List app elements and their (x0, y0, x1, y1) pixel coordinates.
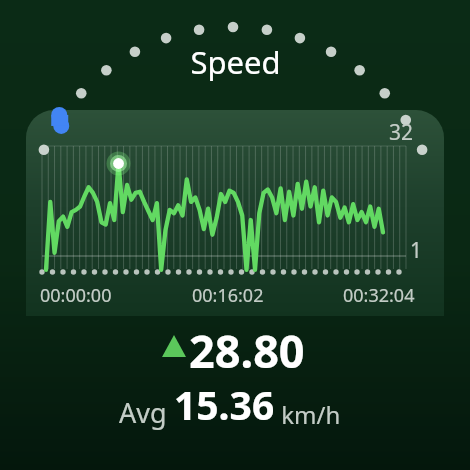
button[interactable] (26, 110, 444, 316)
staticText: 15.36 (174, 378, 275, 431)
button[interactable]: Speed increasing (158, 330, 192, 362)
staticText: 00:00:00 (40, 283, 112, 308)
button[interactable]: Avg (119, 378, 341, 431)
staticText: Speed (190, 41, 281, 83)
staticText: 28.80 (189, 320, 305, 381)
staticText: 32 (389, 118, 414, 147)
button[interactable]: Speed (145, 38, 325, 86)
staticText: 00:32:04 (343, 283, 415, 308)
staticText: 1 (410, 236, 423, 265)
staticText: 00:16:02 (192, 283, 264, 308)
staticText: Avg (119, 394, 174, 431)
staticText: km/h (275, 398, 341, 431)
